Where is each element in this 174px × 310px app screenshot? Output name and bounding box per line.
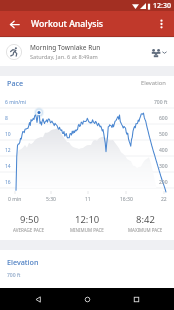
- staticText: MINIMUM PACE: [70, 227, 104, 233]
- staticText: 16:30: [120, 196, 133, 203]
- staticText: 14: [5, 163, 11, 170]
- staticText: 300: [159, 163, 168, 170]
- button[interactable]: Recents: [125, 288, 147, 310]
- staticText: 12:10: [75, 213, 100, 226]
- button[interactable]: Elevation: [141, 79, 166, 87]
- staticText: 12:30: [153, 1, 171, 11]
- button[interactable]: 8:42: [116, 213, 174, 233]
- staticText: Saturday, Jan. 6 at 8:49am: [30, 53, 98, 61]
- staticText: 5:30: [46, 196, 56, 203]
- staticText: Elevation: [7, 257, 39, 267]
- staticText: 16: [5, 179, 11, 186]
- staticText: 12: [5, 147, 11, 154]
- button[interactable]: Back: [27, 288, 49, 310]
- button[interactable]: Home: [76, 288, 98, 310]
- button[interactable]: More options: [148, 11, 174, 37]
- staticText: 10: [5, 131, 11, 138]
- staticText: 8: [5, 115, 8, 122]
- button[interactable]: Shared with: [149, 41, 169, 63]
- button[interactable]: Pace: [7, 78, 24, 88]
- staticText: 700 ft: [7, 272, 21, 279]
- staticText: 200: [159, 179, 168, 186]
- staticText: Pace: [7, 78, 24, 88]
- staticText: 400: [159, 147, 168, 154]
- staticText: 22: [161, 196, 167, 203]
- staticText: 9:50: [20, 213, 39, 226]
- staticText: 6 min/mi: [5, 99, 27, 106]
- staticText: 11: [85, 196, 91, 203]
- staticText: Elevation: [141, 79, 166, 87]
- button[interactable]: 9:50: [0, 213, 58, 233]
- staticText: 8:42: [136, 213, 155, 226]
- staticText: Workout Analysis: [31, 18, 104, 30]
- staticText: Morning Townlake Run: [30, 43, 101, 52]
- staticText: 0 min: [8, 196, 22, 203]
- button[interactable]: Morning Townlake Run: [0, 38, 174, 66]
- staticText: AVERAGE PACE: [13, 227, 45, 233]
- staticText: 700 ft: [154, 99, 168, 106]
- button[interactable]: 12:10: [58, 213, 116, 233]
- button[interactable]: Back: [0, 11, 28, 37]
- staticText: MAXIMUM PACE: [128, 227, 163, 233]
- staticText: 500: [159, 131, 168, 138]
- staticText: 600: [159, 115, 168, 122]
